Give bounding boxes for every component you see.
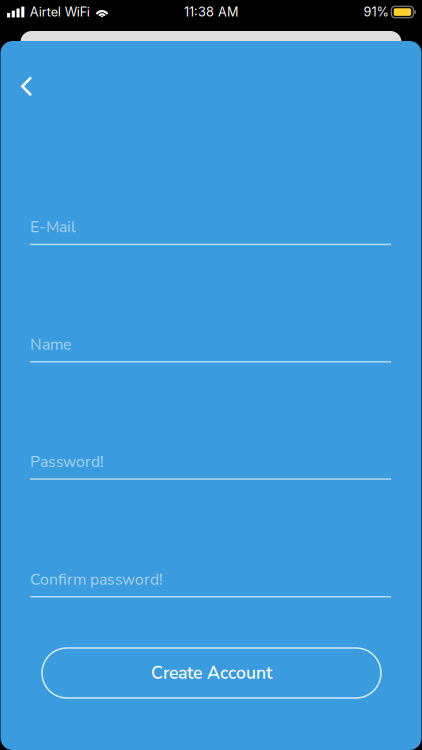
staticText: Create Account (151, 661, 272, 685)
staticText: Name (30, 334, 71, 355)
staticText: E-Mail (30, 217, 76, 238)
staticText: 11:38 AM (184, 4, 238, 20)
staticText: Confirm password! (30, 569, 163, 590)
staticText: Password! (30, 451, 104, 472)
button[interactable]: Back (3, 64, 47, 108)
staticText: Airtel WiFi (30, 4, 90, 20)
staticText: 91% (363, 4, 388, 20)
button[interactable]: Create Account (42, 648, 381, 698)
